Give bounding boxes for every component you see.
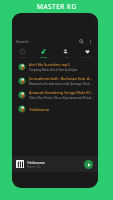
staticText: Songs	[40, 55, 47, 58]
button[interactable]: Play	[84, 160, 93, 169]
button[interactable]: Jerusalema (with. Burkowzi feat. Audi bu…	[18, 74, 94, 88]
staticText: Favorite	[82, 55, 92, 58]
staticText: Mwatumu Strada tooo vuiki Sparago Rock m…	[29, 82, 94, 86]
staticText: Tshikwama	[29, 107, 49, 112]
staticText: Ultra Uba Vhuhu Ubuu Kay tanamala Rocala…	[29, 96, 94, 100]
staticText: MASTER KG	[37, 2, 77, 11]
button[interactable]: Albums	[12, 47, 33, 59]
staticText: Artist	[62, 55, 69, 58]
button[interactable]: More options	[86, 37, 94, 45]
staticText: Tshikwama	[27, 160, 45, 165]
button[interactable]: Tshikwama	[16, 156, 93, 172]
staticText: Amanati Komalong Senga Mola KF - Legi Ka…	[29, 90, 94, 95]
button[interactable]: Amanati Komalong Senga Mola KF - Legi Ka…	[18, 88, 94, 102]
button[interactable]: Search	[16, 35, 94, 47]
button[interactable]: Favorite	[76, 47, 98, 59]
button[interactable]: Tshikwama	[18, 102, 94, 116]
button[interactable]: Search	[77, 37, 85, 45]
button[interactable]: Ain't No Sunshine.mp3	[18, 60, 94, 74]
staticText: Master KG	[27, 165, 41, 169]
button[interactable]: Songs	[33, 47, 54, 59]
staticText: Search	[16, 39, 29, 44]
button[interactable]: Artist	[54, 47, 76, 59]
staticText: Ain't No Sunshine.mp3	[29, 62, 70, 67]
staticText: Tsepang Moss Rock Star Audi jika	[29, 68, 78, 72]
staticText: Albums	[18, 55, 27, 58]
staticText: Jerusalema (with. Burkowzi feat. Audi bu…	[29, 76, 94, 81]
